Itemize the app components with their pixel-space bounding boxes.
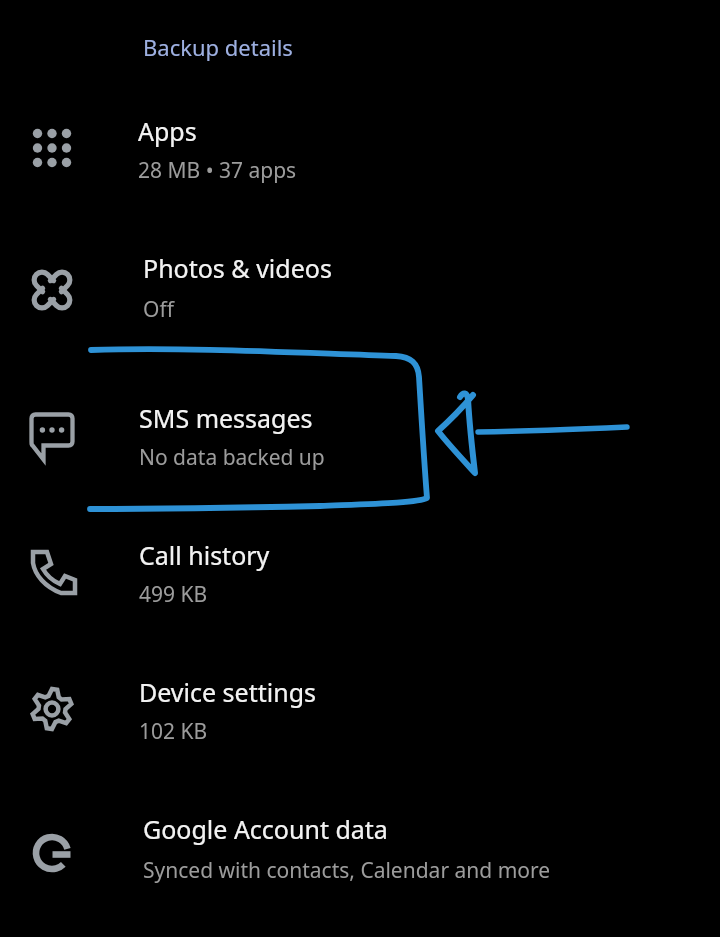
button[interactable]: Google Account data: [0, 785, 720, 921]
staticText: 499 KB: [139, 580, 208, 609]
staticText: Call history: [139, 538, 270, 572]
staticText: Device settings: [139, 675, 316, 709]
button[interactable]: Device settings: [0, 641, 720, 777]
staticText: Synced with contacts, Calendar and more: [143, 856, 551, 885]
staticText: Photos & videos: [143, 251, 332, 285]
staticText: Google Account data: [143, 812, 388, 846]
button[interactable]: SMS messages: [0, 366, 720, 502]
staticText: SMS messages: [139, 401, 313, 435]
staticText: No data backed up: [139, 443, 325, 472]
button[interactable]: Call history: [0, 503, 720, 639]
staticText: Backup details: [143, 32, 293, 62]
button[interactable]: Photos and videos: [0, 222, 720, 358]
staticText: Off: [143, 295, 174, 324]
button[interactable]: Backup details: [0, 20, 720, 76]
staticText: 28 MB • 37 apps: [138, 156, 297, 185]
staticText: 102 KB: [139, 717, 208, 746]
button[interactable]: Apps: [0, 80, 720, 216]
staticText: Apps: [138, 114, 197, 148]
